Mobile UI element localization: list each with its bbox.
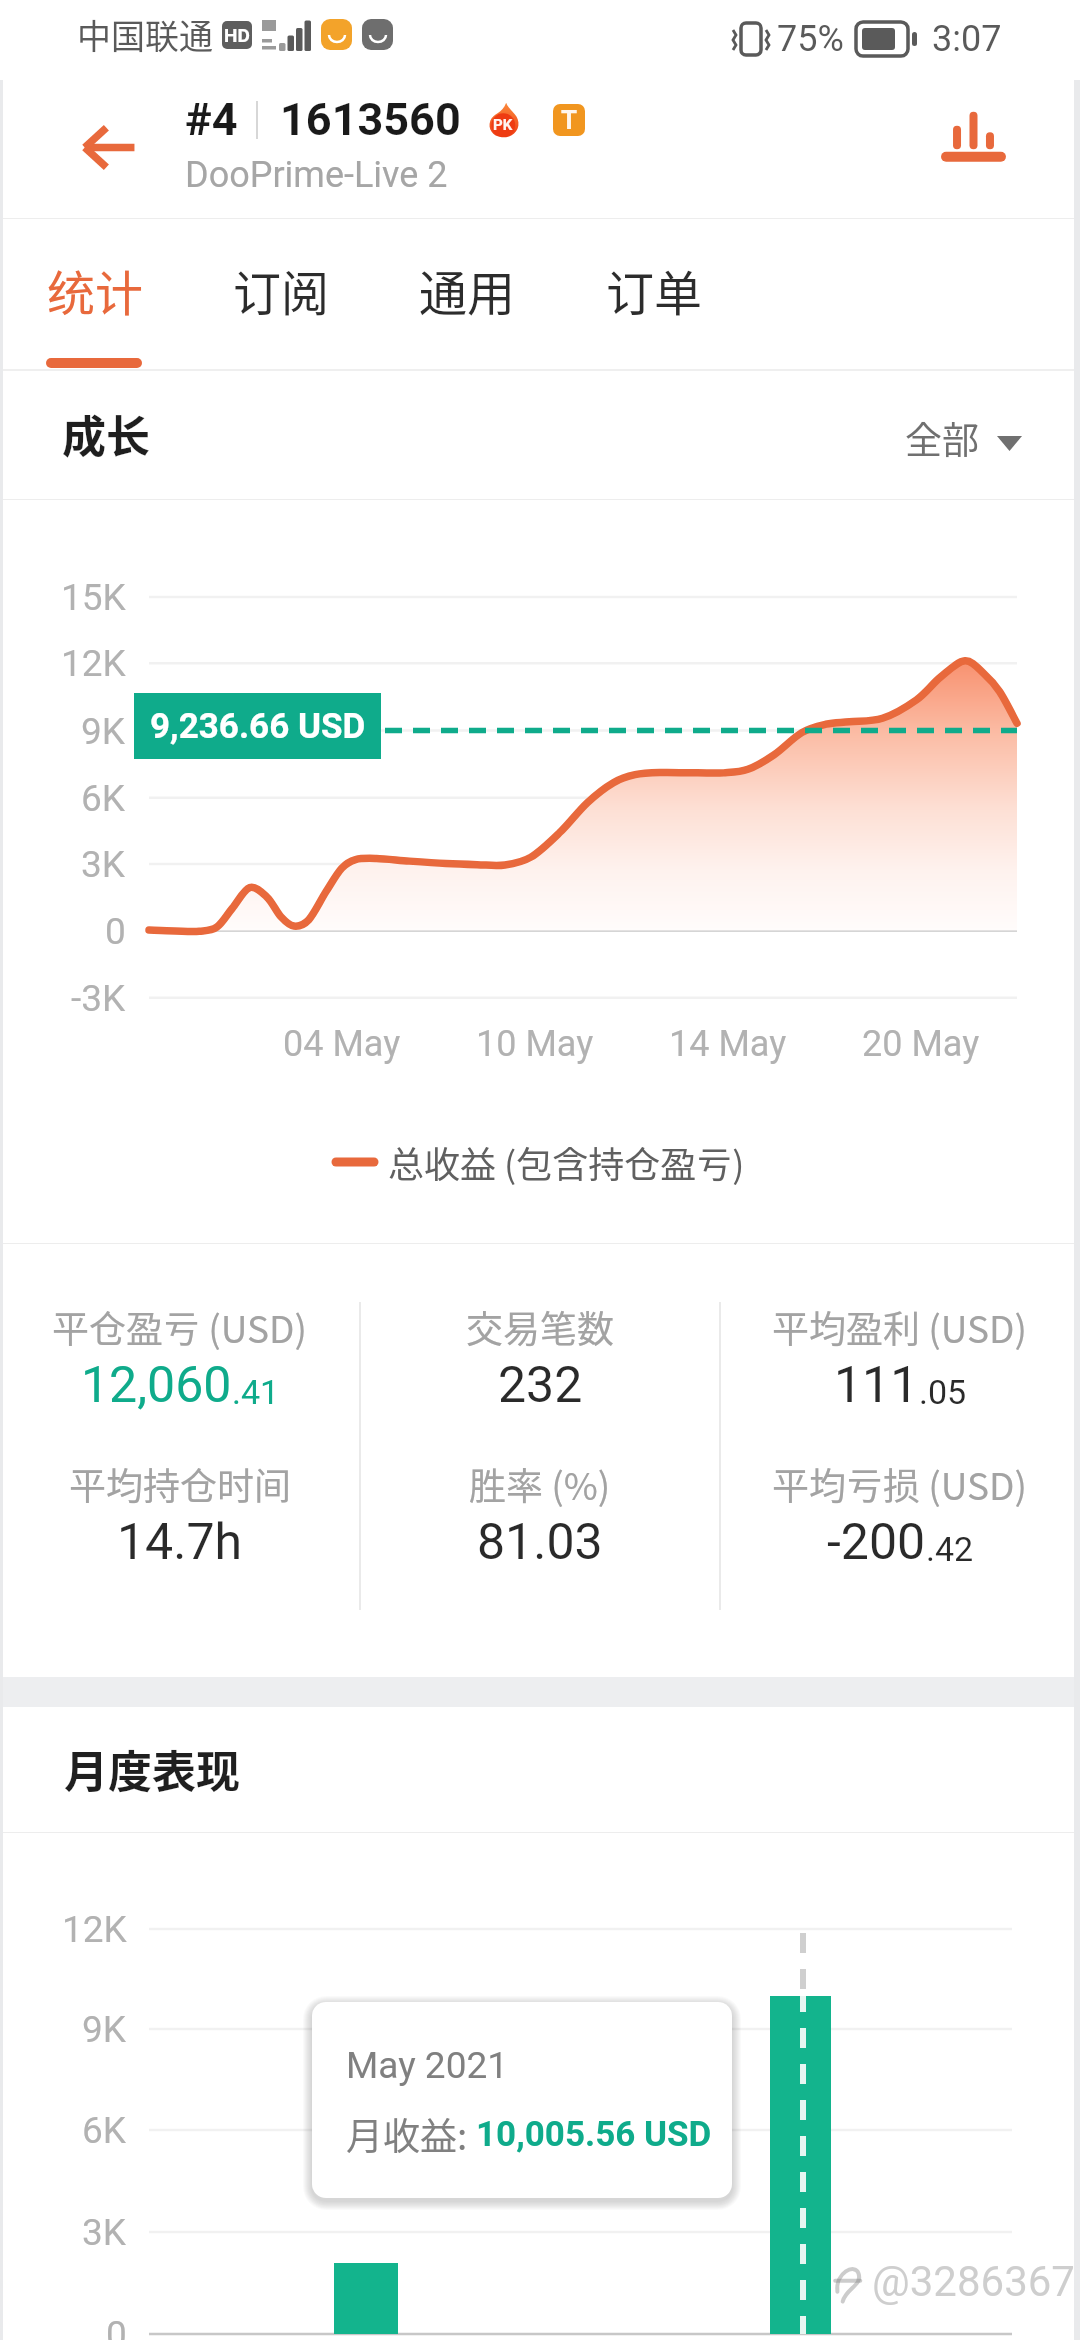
button[interactable]: 通用 xyxy=(389,219,545,371)
staticText: 胜率 (%) xyxy=(469,1457,611,1509)
staticText: 20 May xyxy=(862,1023,980,1065)
staticText: 0 xyxy=(106,2313,127,2340)
staticText: 1613560 xyxy=(280,93,461,146)
staticText: .41 xyxy=(232,1372,280,1412)
staticText: 平均盈利 (USD) xyxy=(772,1300,1028,1352)
staticText: 成长 xyxy=(62,402,150,466)
staticText: 12K xyxy=(61,642,126,685)
staticText: 111 xyxy=(834,1356,919,1415)
staticText: 15K xyxy=(61,576,126,619)
staticText: 12,060 xyxy=(81,1356,232,1415)
staticText: 3K xyxy=(81,843,126,886)
button[interactable]: Back xyxy=(56,95,160,199)
staticText: 6K xyxy=(82,2109,127,2152)
staticText: 交易笔数 xyxy=(466,1300,614,1352)
button[interactable]: 统计 xyxy=(17,219,173,371)
staticText: 75% xyxy=(777,18,844,60)
staticText: 3:07 xyxy=(932,18,1002,60)
button[interactable]: 订阅 xyxy=(203,219,359,371)
staticText: 总收益 (包含持仓盈亏) xyxy=(388,1136,745,1188)
staticText: 12K xyxy=(62,1908,127,1951)
staticText: 9K xyxy=(81,710,126,753)
button[interactable]: 订单 xyxy=(576,219,732,371)
staticText: 平仓盈亏 (USD) xyxy=(52,1300,308,1352)
staticText: #4 xyxy=(185,93,238,146)
staticText: 月度表现 xyxy=(64,1737,240,1801)
staticText: 9,236.66 USD xyxy=(150,706,366,747)
staticText: May 2021 xyxy=(346,2044,509,2087)
staticText: PK xyxy=(493,116,513,134)
staticText: 订单 xyxy=(606,255,703,325)
staticText: 232 xyxy=(498,1356,583,1415)
staticText: 14 May xyxy=(669,1023,787,1065)
button[interactable]: #4 xyxy=(185,93,585,146)
staticText: -3K xyxy=(71,977,126,1020)
staticText: 通用 xyxy=(419,255,516,325)
staticText: 9K xyxy=(82,2008,127,2051)
staticText: 订阅 xyxy=(233,255,330,325)
staticText: 平均亏损 (USD) xyxy=(772,1457,1028,1509)
staticText: 10 May xyxy=(476,1023,594,1065)
staticText: 6K xyxy=(81,777,126,820)
staticText: 3K xyxy=(82,2211,127,2254)
button[interactable]: 全部 xyxy=(905,411,1022,465)
staticText: DooPrime-Live 2 xyxy=(185,154,448,196)
staticText: -200 xyxy=(827,1513,926,1572)
staticText: .05 xyxy=(919,1372,967,1412)
staticText: T xyxy=(561,105,578,135)
staticText: .42 xyxy=(926,1529,974,1569)
staticText: 月收益: xyxy=(346,2107,476,2161)
button[interactable]: Statistics xyxy=(918,79,1028,189)
staticText: 10,005.56 USD xyxy=(476,2114,712,2155)
staticText: 04 May xyxy=(283,1023,401,1065)
staticText: 14.7h xyxy=(117,1513,243,1572)
staticText: 平均持仓时间 xyxy=(69,1457,291,1509)
staticText: 0 xyxy=(105,910,126,953)
staticText: 全部 xyxy=(905,411,979,465)
staticText: @3286367 xyxy=(872,2257,1075,2306)
staticText: 中国联通 xyxy=(77,10,213,59)
staticText: 81.03 xyxy=(477,1513,603,1572)
staticText: HD xyxy=(224,24,250,46)
staticText: 统计 xyxy=(47,255,144,325)
